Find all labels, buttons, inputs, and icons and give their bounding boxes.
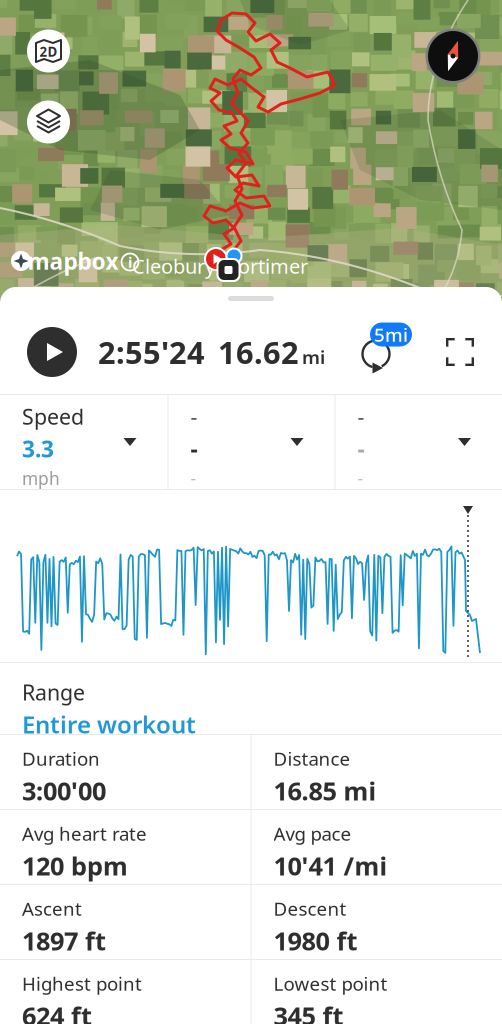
staticText: 16.85 mi: [273, 774, 376, 807]
button[interactable]: Loop every 5 miles: [356, 325, 412, 379]
staticText: 10'41 /mi: [273, 849, 387, 882]
staticText: Duration: [22, 746, 100, 771]
button[interactable]: Select metric: [0, 394, 167, 490]
staticText: 624 ft: [22, 999, 92, 1024]
staticText: Entire workout: [22, 708, 196, 740]
staticText: 3.3: [22, 434, 54, 464]
staticText: mapbox: [27, 246, 118, 276]
staticText: Cleobury Mortimer: [132, 253, 308, 279]
staticText: Lowest point: [273, 971, 387, 996]
button[interactable]: Select metric: [335, 394, 502, 490]
staticText: mph: [22, 467, 60, 490]
staticText: i: [128, 252, 132, 272]
staticText: -: [190, 434, 197, 464]
button[interactable]: Map layers: [27, 100, 70, 143]
button[interactable]: 2D map: [27, 29, 70, 72]
staticText: 16.62: [218, 332, 299, 372]
staticText: 3:00'00: [22, 774, 106, 807]
staticText: Avg pace: [273, 821, 351, 846]
staticText: -: [357, 434, 364, 464]
staticText: 5mi: [374, 322, 408, 347]
staticText: -: [357, 402, 364, 431]
button[interactable]: Map information: [121, 253, 139, 271]
staticText: Descent: [273, 896, 346, 921]
staticText: Highest point: [22, 971, 142, 996]
staticText: 345 ft: [273, 999, 343, 1024]
button[interactable]: Select metric: [168, 394, 334, 490]
staticText: 2D: [39, 43, 57, 60]
staticText: Distance: [273, 746, 350, 771]
staticText: Range: [22, 678, 85, 706]
staticText: 2:55'24: [98, 332, 205, 372]
staticText: -: [190, 402, 197, 431]
staticText: 1897 ft: [22, 924, 106, 957]
button[interactable]: Play workout: [27, 327, 77, 377]
staticText: Speed: [22, 402, 84, 431]
staticText: -: [357, 467, 363, 490]
staticText: mi: [302, 345, 325, 369]
staticText: 1980 ft: [273, 924, 357, 957]
staticText: -: [190, 467, 196, 490]
button[interactable]: Range: [0, 663, 502, 734]
staticText: 120 bpm: [22, 849, 128, 882]
staticText: Avg heart rate: [22, 821, 147, 846]
button[interactable]: Compass: [425, 28, 481, 84]
staticText: Ascent: [22, 896, 82, 921]
button[interactable]: Fullscreen map: [446, 338, 474, 366]
